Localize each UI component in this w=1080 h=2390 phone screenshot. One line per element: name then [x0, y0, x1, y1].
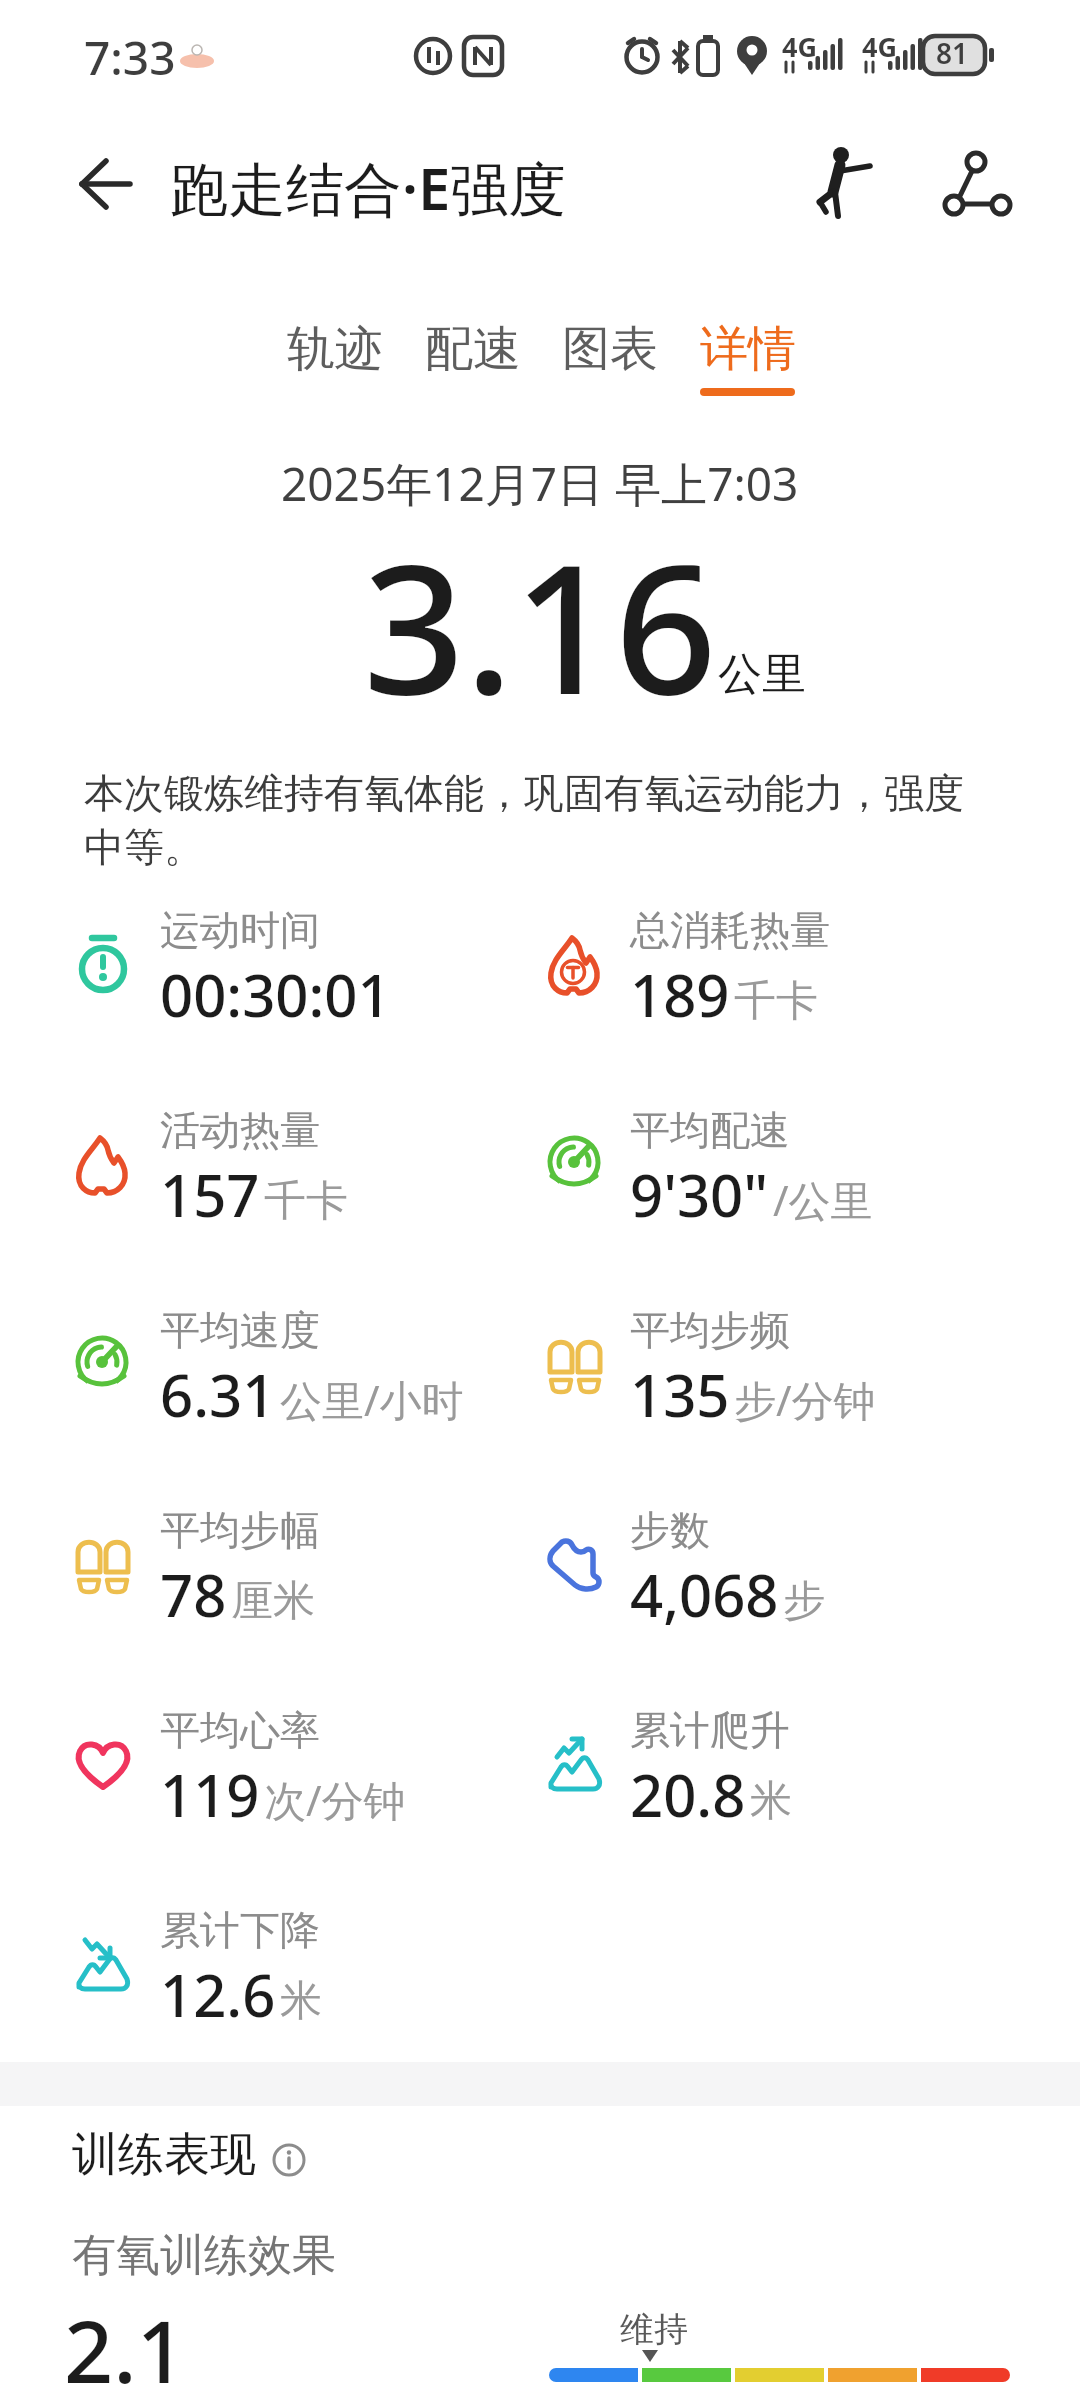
staticText: 运动时间: [160, 905, 320, 955]
staticText: 135: [630, 1355, 730, 1434]
staticText: 步: [783, 1575, 825, 1628]
staticText: 轨迹: [287, 319, 383, 379]
staticText: 4,068: [630, 1555, 779, 1634]
staticText: 12.6: [160, 1955, 276, 2034]
staticText: 4G: [862, 28, 897, 65]
staticText: 配速: [425, 319, 521, 379]
staticText: 平均速度: [160, 1305, 320, 1355]
staticText: 6.31: [160, 1355, 276, 1434]
button[interactable]: [800, 140, 890, 230]
staticText: 78: [160, 1555, 227, 1634]
staticText: 2.1: [64, 2291, 186, 2390]
staticText: 公里/小时: [280, 1371, 464, 1428]
staticText: 跑走结合·E强度: [170, 148, 567, 227]
staticText: 总消耗热量: [630, 905, 830, 955]
staticText: 157: [160, 1155, 260, 1234]
staticText: 公里: [718, 647, 806, 702]
staticText: 累计爬升: [630, 1705, 790, 1755]
staticText: 00:30:01: [160, 955, 391, 1034]
staticText: 累计下降: [160, 1905, 320, 1955]
button[interactable]: 详情: [688, 310, 808, 386]
staticText: 本次锻炼维持有氧体能，巩固有氧运动能力，强度中等。: [84, 768, 984, 873]
staticText: 平均步幅: [160, 1505, 320, 1555]
staticText: 平均配速: [630, 1105, 790, 1155]
staticText: 米: [280, 1975, 322, 2028]
staticText: 千卡: [264, 1175, 348, 1228]
staticText: 7:33: [84, 26, 176, 89]
staticText: 详情: [700, 319, 796, 379]
staticText: 千卡: [734, 975, 818, 1028]
button[interactable]: [271, 2142, 307, 2178]
staticText: 活动热量: [160, 1105, 320, 1155]
staticText: 步/分钟: [734, 1371, 876, 1428]
staticText: 2025年12月7日 早上7:03: [281, 452, 799, 515]
staticText: 米: [750, 1775, 792, 1828]
staticText: /公里: [773, 1171, 873, 1228]
staticText: 训练表现: [72, 2126, 256, 2184]
staticText: 平均步频: [630, 1305, 790, 1355]
staticText: 189: [630, 955, 730, 1034]
staticText: 平均心率: [160, 1705, 320, 1755]
staticText: 4G: [782, 28, 817, 65]
staticText: 119: [160, 1755, 260, 1834]
button[interactable]: 图表: [550, 310, 670, 386]
staticText: 厘米: [231, 1575, 315, 1628]
staticText: 图表: [562, 319, 658, 379]
button[interactable]: 轨迹: [275, 310, 395, 386]
staticText: 维持: [620, 2308, 688, 2351]
button[interactable]: [60, 144, 150, 234]
button[interactable]: 配速: [413, 310, 533, 386]
button[interactable]: [930, 140, 1020, 230]
staticText: 3.16: [363, 504, 717, 746]
staticText: 次/分钟: [264, 1771, 406, 1828]
staticText: 9'30": [630, 1155, 769, 1234]
staticText: 20.8: [630, 1755, 746, 1834]
staticText: 81: [936, 34, 969, 72]
staticText: 步数: [630, 1505, 710, 1555]
staticText: 有氧训练效果: [72, 2228, 336, 2283]
